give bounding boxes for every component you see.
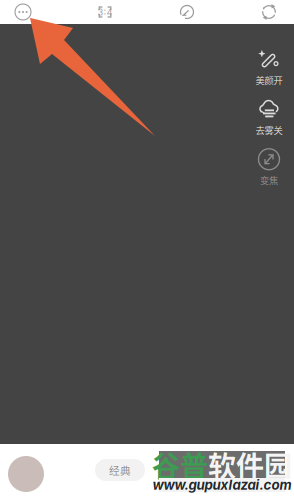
staticText: 去雾关 bbox=[255, 123, 282, 137]
staticText: 美颜开 bbox=[255, 73, 282, 87]
staticText: 经典 bbox=[109, 462, 131, 478]
button[interactable]: 美颜开 bbox=[248, 48, 290, 86]
button[interactable]: Switch camera bbox=[259, 2, 279, 22]
staticText: 变焦 bbox=[260, 173, 278, 187]
staticText: 谷普 bbox=[152, 444, 208, 485]
button[interactable]: 变焦 bbox=[248, 148, 290, 186]
button[interactable]: More options bbox=[13, 2, 33, 22]
staticText: 3:4 bbox=[97, 6, 112, 18]
button[interactable]: 经典 bbox=[95, 463, 145, 485]
button[interactable]: Last photo bbox=[8, 456, 44, 492]
staticText: 软件园 bbox=[208, 444, 292, 485]
button[interactable]: 去雾关 bbox=[248, 98, 290, 136]
staticText: www.gupuxlazai.com bbox=[152, 477, 291, 493]
button[interactable]: Aspect ratio 3 to 4 bbox=[95, 2, 115, 22]
button[interactable]: Shutter timer bbox=[177, 2, 197, 22]
